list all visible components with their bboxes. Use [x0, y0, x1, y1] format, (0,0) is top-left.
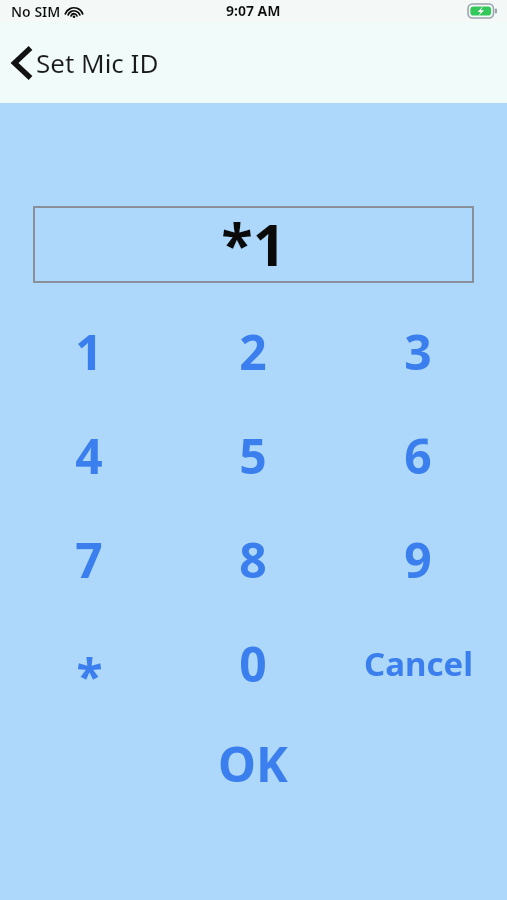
staticText: 5	[239, 423, 267, 488]
staticText: No SIM	[11, 2, 61, 21]
staticText: 9:07 AM	[226, 1, 281, 20]
staticText: *	[76, 643, 103, 708]
other: Back	[12, 48, 30, 78]
button[interactable]: *1	[33, 206, 474, 283]
button[interactable]: 6	[343, 407, 493, 503]
button[interactable]: 9	[343, 511, 493, 607]
staticText: 4	[75, 423, 103, 488]
staticText: 3	[404, 319, 432, 384]
staticText: 6	[404, 423, 432, 488]
staticText: 0	[239, 631, 267, 696]
button[interactable]: *	[14, 615, 164, 711]
button[interactable]: 0	[178, 615, 328, 711]
button[interactable]: Cancel	[343, 615, 493, 711]
staticText: 1	[75, 319, 103, 384]
staticText: Set Mic ID	[36, 45, 159, 80]
button[interactable]: 1	[14, 303, 164, 399]
button[interactable]: 7	[14, 511, 164, 607]
staticText: OK	[218, 731, 288, 796]
staticText: Cancel	[364, 641, 473, 686]
staticText: 7	[75, 527, 103, 592]
staticText: 9	[404, 527, 432, 592]
button[interactable]: Back	[0, 39, 171, 86]
staticText: *1	[221, 204, 286, 281]
staticText: 2	[239, 319, 267, 384]
button[interactable]: 5	[178, 407, 328, 503]
button[interactable]: OK	[178, 715, 328, 811]
button[interactable]: 4	[14, 407, 164, 503]
staticText: 8	[239, 527, 267, 592]
button[interactable]: 3	[343, 303, 493, 399]
button[interactable]: 8	[178, 511, 328, 607]
button[interactable]: 2	[178, 303, 328, 399]
